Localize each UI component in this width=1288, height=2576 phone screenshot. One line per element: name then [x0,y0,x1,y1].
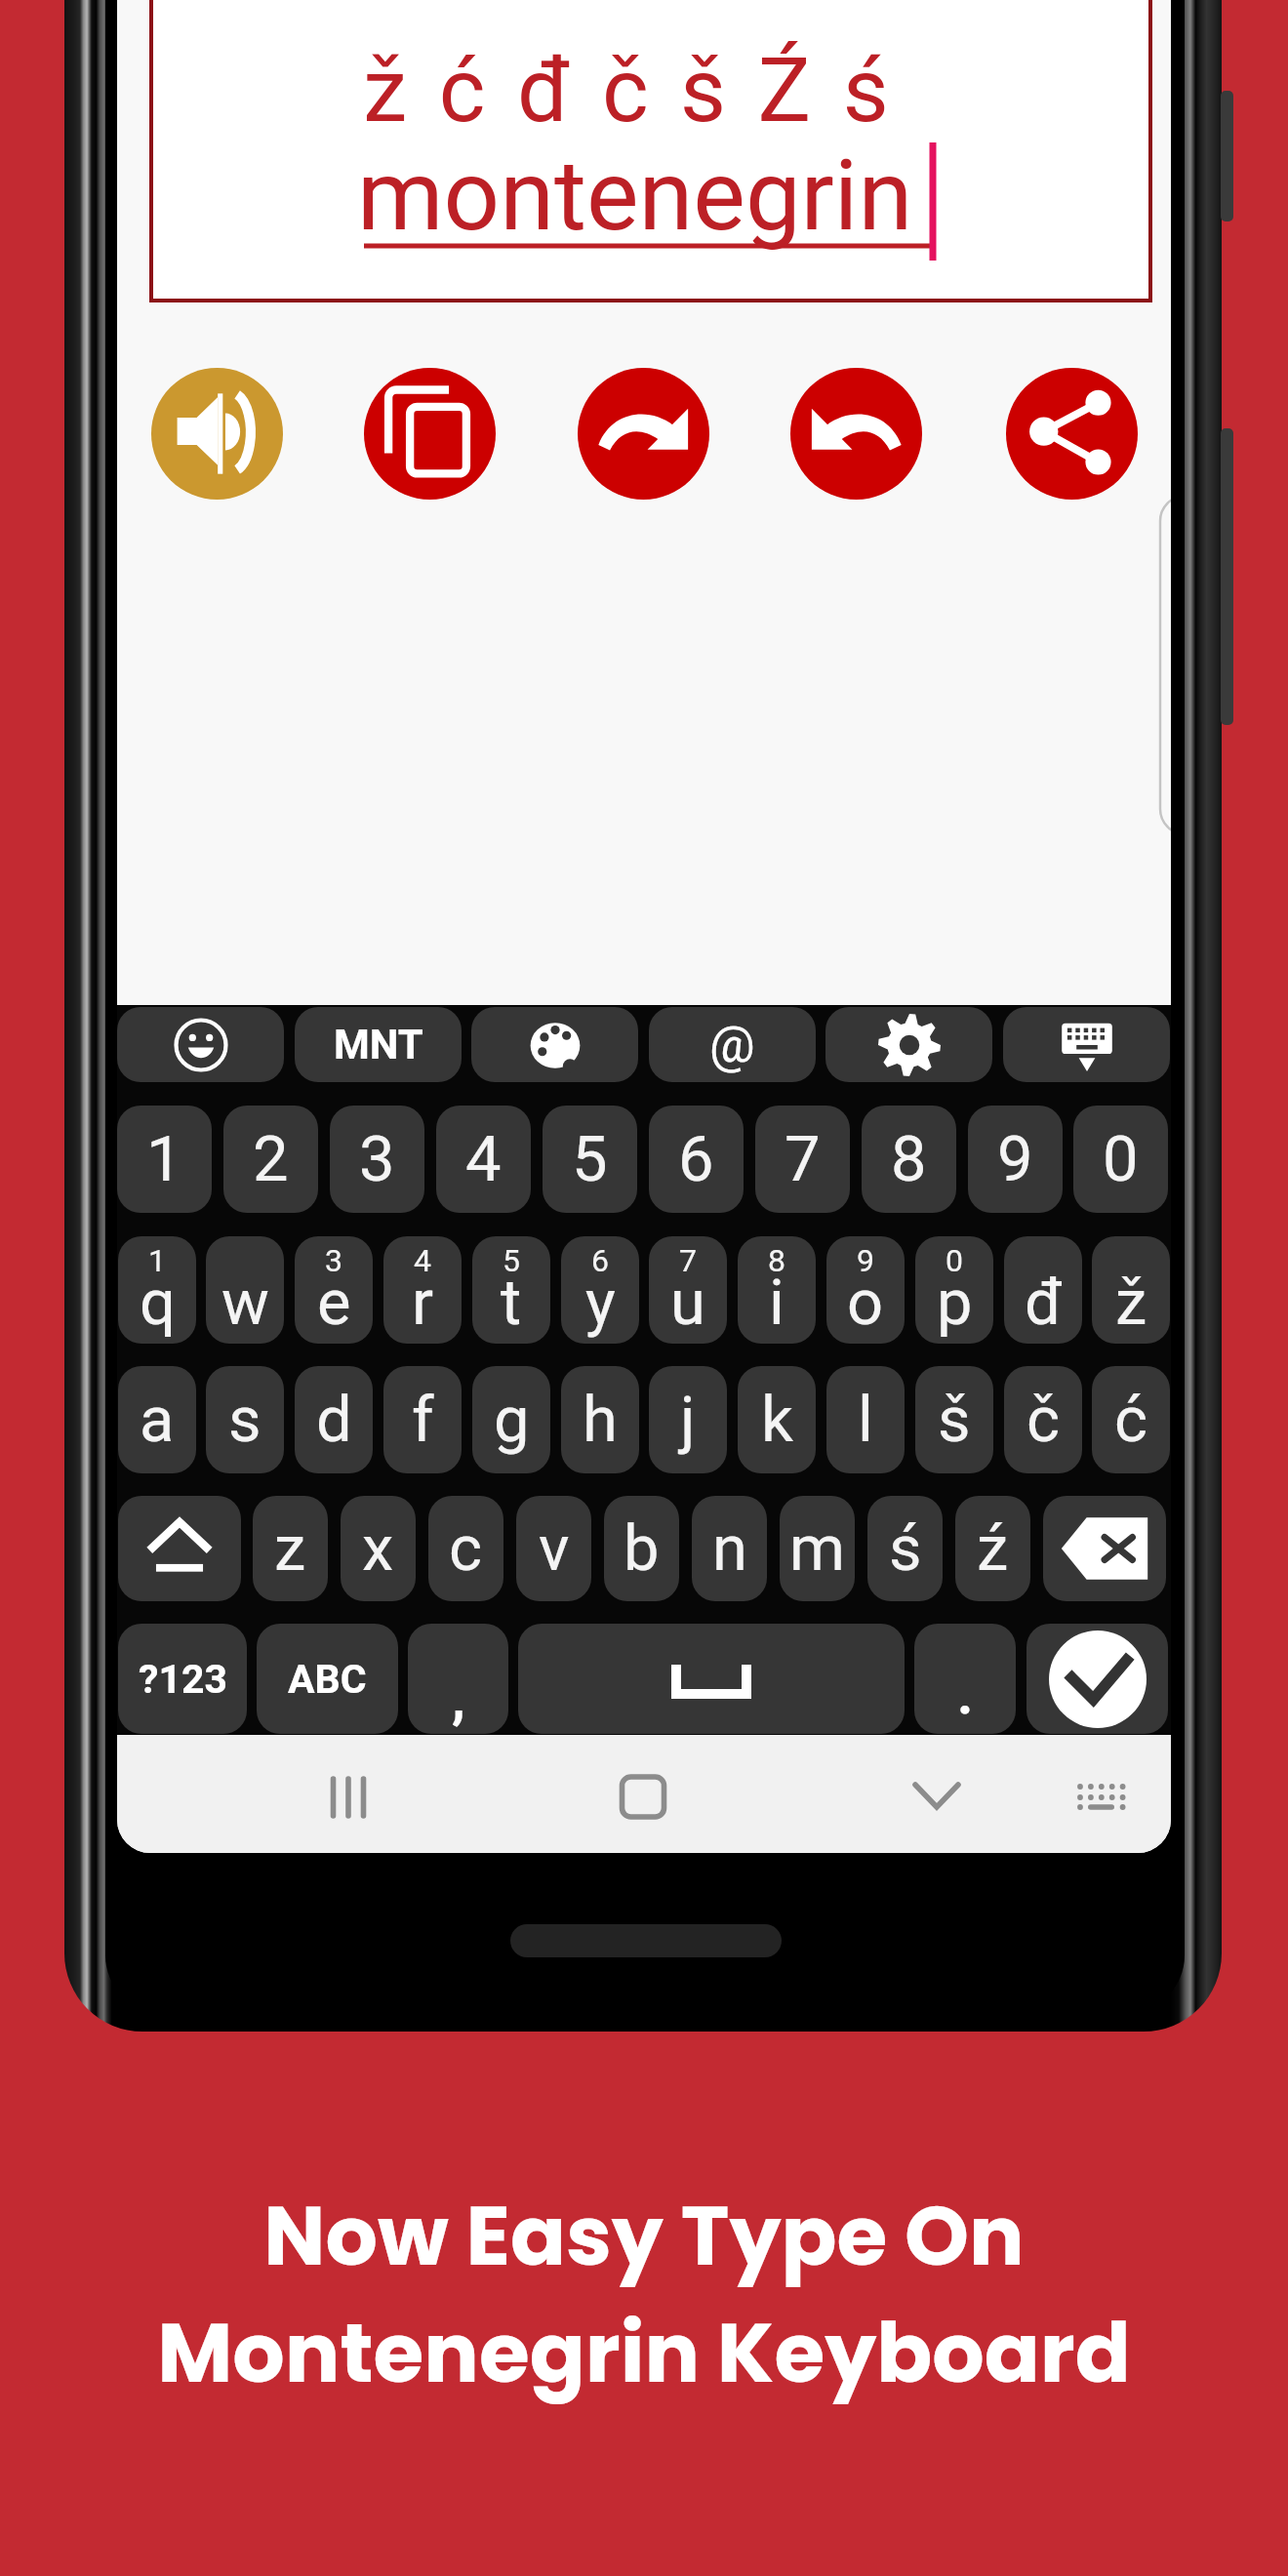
button[interactable]: a [118,1366,196,1473]
button[interactable]: z [253,1496,328,1601]
button[interactable]: g [472,1366,550,1473]
button[interactable]: x [341,1496,416,1601]
button[interactable]: č [1004,1366,1082,1473]
button[interactable]: Redo [578,368,709,500]
button[interactable]: c [428,1496,503,1601]
button[interactable]: d [295,1366,373,1473]
button[interactable]: 7 [755,1106,850,1213]
button[interactable]: Home [599,1753,687,1841]
button[interactable]: ś [867,1496,943,1601]
staticText: p [937,1266,973,1340]
staticText: ž [1115,1266,1147,1340]
button[interactable]: Copy [364,368,496,500]
staticText: ź [977,1511,1009,1586]
staticText: j [680,1383,696,1457]
button[interactable]: ž [1092,1236,1170,1344]
button[interactable]: Comma [408,1624,508,1734]
button[interactable]: 0 [1073,1106,1168,1213]
button[interactable]: Settings [825,1007,992,1082]
button[interactable]: q [118,1236,196,1344]
button[interactable]: @ [649,1007,816,1082]
button[interactable]: o [826,1236,905,1344]
button[interactable]: 6 [649,1106,744,1213]
button[interactable]: MNT [295,1007,462,1082]
button[interactable]: y [561,1236,639,1344]
button[interactable]: Recents [304,1753,392,1841]
button[interactable]: t [472,1236,550,1344]
button[interactable]: n [692,1496,767,1601]
staticText: g [494,1383,530,1457]
staticText: montenegrin [357,138,913,253]
button[interactable]: 5 [543,1106,637,1213]
staticText: c [449,1511,483,1586]
button[interactable]: 8 [862,1106,956,1213]
staticText: MNT [334,1021,423,1068]
staticText: n [712,1511,747,1586]
staticText: 8 [891,1122,927,1196]
button[interactable]: Hide keyboard [1003,1007,1170,1082]
staticText: 2 [253,1122,289,1196]
button[interactable]: ABC [257,1624,398,1734]
button[interactable]: f [383,1366,462,1473]
button[interactable]: Hide keyboard [893,1753,981,1841]
button[interactable]: j [649,1366,727,1473]
button[interactable]: Shift [118,1496,241,1601]
staticText: f [412,1383,434,1457]
button[interactable]: 1 [117,1106,212,1213]
button[interactable]: 2 [223,1106,318,1213]
button[interactable]: s [206,1366,284,1473]
staticText: 5 [503,1242,520,1279]
staticText: Now Easy Type On [263,2179,1025,2294]
button[interactable]: h [561,1366,639,1473]
button[interactable]: r [383,1236,462,1344]
staticText: w [221,1266,269,1340]
staticText: x [362,1511,394,1586]
button[interactable]: Undo [790,368,922,500]
button[interactable]: Switch keyboard [1055,1753,1143,1841]
staticText: č [1026,1383,1061,1457]
staticText: l [858,1383,873,1457]
button[interactable]: u [649,1236,727,1344]
button[interactable]: ?123 [118,1624,247,1734]
staticText: 4 [414,1242,431,1279]
button[interactable]: 9 [968,1106,1063,1213]
button[interactable]: i [738,1236,816,1344]
button[interactable]: š [915,1366,993,1473]
button[interactable]: 4 [436,1106,531,1213]
button[interactable]: e [295,1236,373,1344]
staticText: ć [1114,1383,1148,1457]
button[interactable]: Enter [1026,1624,1168,1734]
staticText: 0 [946,1242,963,1279]
button[interactable]: k [738,1366,816,1473]
staticText: 7 [785,1122,821,1196]
staticText: 6 [591,1242,609,1279]
staticText: @ [709,1015,755,1074]
button[interactable]: w [206,1236,284,1344]
button[interactable]: l [826,1366,905,1473]
button[interactable]: v [516,1496,591,1601]
button[interactable]: Theme [471,1007,638,1082]
button[interactable]: Period [914,1624,1016,1734]
staticText: u [670,1266,705,1340]
staticText: b [624,1511,660,1586]
button[interactable]: Speak [151,368,283,500]
staticText: d [316,1383,352,1457]
staticText: q [140,1266,176,1340]
button[interactable]: Backspace [1043,1496,1166,1601]
button[interactable]: ć [1092,1366,1170,1473]
button[interactable]: b [604,1496,679,1601]
button[interactable]: đ [1004,1236,1082,1344]
button[interactable]: Space [518,1624,905,1734]
button[interactable]: m [780,1496,855,1601]
staticText: Montenegrin Keyboard [157,2296,1131,2411]
staticText: 7 [679,1242,697,1279]
staticText: , [452,1667,465,1731]
staticText: 9 [857,1242,874,1279]
button[interactable]: p [915,1236,993,1344]
staticText: i [769,1266,785,1340]
button[interactable]: 3 [330,1106,424,1213]
button[interactable]: Emoji [117,1007,284,1082]
button[interactable]: ź [955,1496,1030,1601]
button[interactable]: Share [1006,368,1138,500]
staticText: 8 [768,1242,785,1279]
